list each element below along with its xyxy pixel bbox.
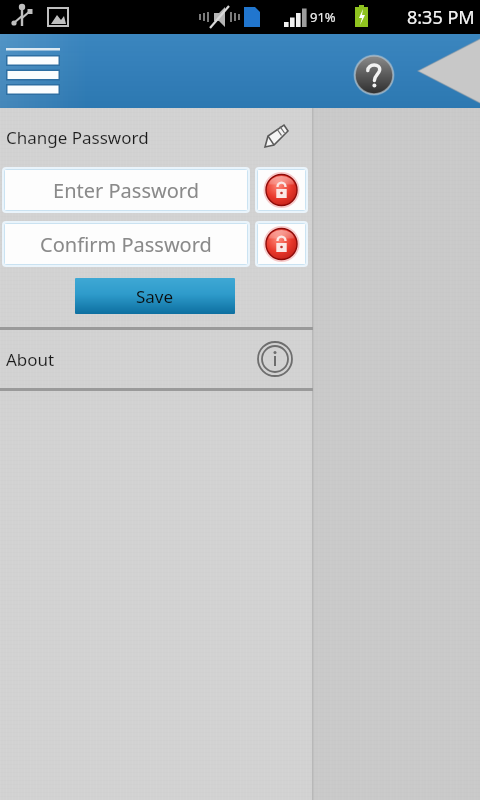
button[interactable]: Collapse panel [410, 34, 480, 108]
button[interactable]: Help [353, 54, 395, 96]
staticText: Confirm Password [40, 231, 212, 258]
staticText: Change Password [6, 126, 149, 149]
button[interactable]: Show password [257, 223, 306, 265]
button[interactable]: Show password [257, 169, 306, 211]
button[interactable]: About [0, 330, 313, 388]
button[interactable]: Confirm Password [4, 223, 248, 265]
other: About [255, 339, 295, 379]
button[interactable]: Enter Password [4, 169, 248, 211]
staticText: About [6, 348, 55, 371]
button[interactable]: Save [75, 278, 235, 314]
button[interactable]: Open navigation drawer [2, 46, 64, 98]
staticText: 8:35 PM [407, 5, 475, 30]
staticText: Save [136, 285, 174, 308]
button[interactable]: Change Password [0, 108, 313, 166]
other: Edit password [255, 117, 295, 157]
staticText: 91% [310, 8, 336, 26]
staticText: Enter Password [53, 177, 199, 204]
